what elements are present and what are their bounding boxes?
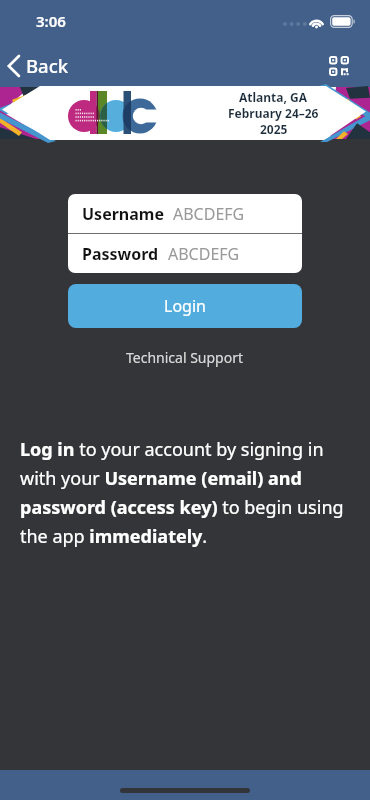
staticText: Technical Support <box>126 348 244 367</box>
staticText: February 24–26 <box>228 105 319 121</box>
staticText: ABCDEFG <box>173 203 245 225</box>
button[interactable]: Login <box>68 284 302 328</box>
button[interactable]: Technical Support <box>120 342 250 373</box>
button[interactable]: Password <box>68 234 302 273</box>
button[interactable]: Back <box>0 49 81 82</box>
staticText: 3:06 <box>36 11 66 31</box>
staticText: ABCDEFG <box>168 243 240 265</box>
staticText: Login <box>164 295 206 317</box>
staticText: Log in to your account by signing in wit… <box>20 437 344 548</box>
staticText: Password <box>82 243 159 265</box>
staticText: Back <box>26 53 69 78</box>
staticText: 2025 <box>260 121 288 137</box>
button[interactable]: Scan QR code <box>317 46 370 86</box>
button[interactable]: Username <box>68 194 302 233</box>
staticText: Username <box>82 203 164 225</box>
staticText: Atlanta, GA <box>239 89 308 105</box>
